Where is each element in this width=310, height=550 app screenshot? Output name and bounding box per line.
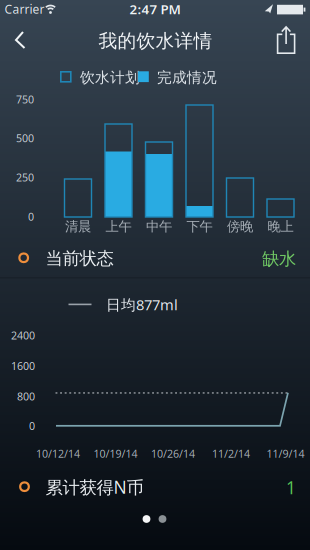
staticText: Carrier [4,1,44,17]
staticText: 缺水 [262,248,296,270]
staticText: 0 [28,210,34,224]
staticText: 傍晚 [227,218,253,235]
staticText: 2:47 PM [129,0,180,18]
button[interactable]: Back [6,23,34,58]
staticText: 当前状态 [45,248,113,269]
staticText: 10/19/14 [93,446,137,461]
staticText: 11/2/14 [212,446,250,461]
staticText: 我的饮水详情 [98,29,212,52]
staticText: 0 [29,419,35,433]
staticText: 11/9/14 [266,446,304,461]
staticText: 下午 [186,218,212,235]
staticText: 2400 [11,328,35,342]
staticText: 10/12/14 [36,446,80,461]
staticText: 累计获得N币 [45,475,143,498]
staticText: 800 [17,389,35,403]
staticText: 1 [286,476,296,499]
staticText: 日均877ml [106,295,178,314]
staticText: 1600 [11,359,35,373]
staticText: 完成情况 [157,68,217,86]
staticText: 上午 [105,218,131,235]
staticText: 10/26/14 [151,446,195,461]
staticText: 750 [16,92,34,106]
staticText: 250 [16,170,34,184]
staticText: 清晨 [65,218,91,235]
staticText: 500 [16,131,34,145]
staticText: 晚上 [267,218,293,235]
button[interactable]: Share [270,21,302,61]
staticText: 中午 [146,218,172,235]
staticText: 饮水计划 [80,68,140,86]
